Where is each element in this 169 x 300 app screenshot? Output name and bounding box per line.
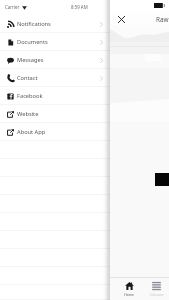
staticText: Website <box>17 110 39 118</box>
button[interactable]: Facebook <box>0 87 110 105</box>
button[interactable]: Close <box>115 13 127 25</box>
button[interactable]: Home <box>115 278 143 300</box>
button[interactable]: Notifications <box>0 15 110 33</box>
staticText: Messages <box>17 56 44 64</box>
staticText: Carrier <box>5 4 20 10</box>
button[interactable]: About App <box>0 123 110 141</box>
staticText: Contact <box>17 74 38 82</box>
staticText: Discover <box>150 292 164 297</box>
button[interactable]: Discover <box>144 278 169 300</box>
staticText: 8:59 AM <box>71 4 88 10</box>
staticText: Documents <box>17 38 48 46</box>
staticText: Notifications <box>17 20 51 28</box>
staticText: About App <box>17 128 46 136</box>
button[interactable]: Messages <box>0 51 110 69</box>
staticText: Home <box>124 292 134 297</box>
button[interactable]: Contact <box>0 69 110 87</box>
button[interactable]: Documents <box>0 33 110 51</box>
staticText: Rawhide Ridge <box>156 15 169 24</box>
staticText: Facebook <box>17 92 43 100</box>
button[interactable]: Website <box>0 105 110 123</box>
